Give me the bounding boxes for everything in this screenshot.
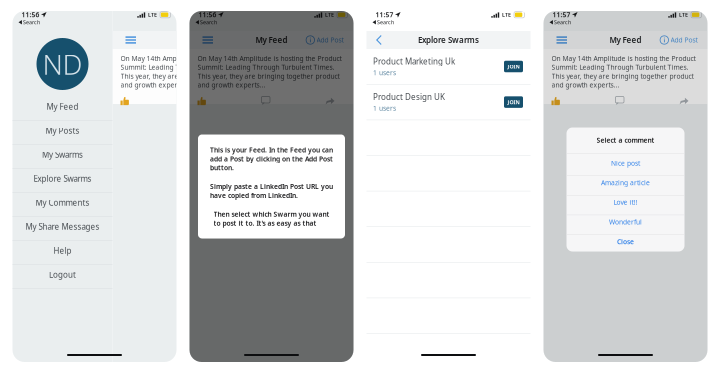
- staticText: LTE: [502, 11, 511, 18]
- staticText: ND: [42, 45, 82, 83]
- staticText: Product Design UK: [373, 92, 445, 102]
- staticText: Nice post: [611, 159, 640, 167]
- button[interactable]: Add Post: [227, 34, 268, 46]
- staticText: Amazing article: [601, 178, 650, 187]
- staticText: 1 users: [373, 68, 396, 77]
- staticText: 11:57: [375, 10, 393, 19]
- staticText: LTE: [325, 11, 334, 18]
- staticText: 11:56: [198, 10, 216, 19]
- staticText: Search: [200, 19, 217, 26]
- button[interactable]: JOIN: [504, 61, 523, 72]
- staticText: Search: [23, 19, 40, 26]
- staticText: My Feed: [255, 35, 287, 45]
- staticText: My Posts: [45, 125, 79, 136]
- button[interactable]: Logout: [12, 263, 112, 287]
- staticText: My Feed: [609, 35, 641, 45]
- button[interactable]: Menu: [123, 34, 138, 46]
- staticText: 11:56: [21, 10, 39, 19]
- button[interactable]: Share: [679, 96, 688, 105]
- button[interactable]: My Comments: [12, 191, 112, 215]
- staticText: My Swarms: [42, 149, 83, 160]
- button[interactable]: My Swarms: [12, 143, 112, 167]
- staticText: On May 14th Amplitude is hosting the Pro…: [551, 54, 695, 89]
- button[interactable]: Love it!!: [566, 193, 684, 212]
- button[interactable]: Like: [120, 96, 129, 105]
- staticText: LTE: [148, 11, 157, 18]
- button[interactable]: My Feed: [12, 95, 112, 119]
- staticText: Love it!!: [613, 198, 637, 207]
- staticText: Add Post: [670, 36, 697, 44]
- staticText: Search: [377, 19, 394, 26]
- button[interactable]: Wonderful: [566, 212, 684, 232]
- staticText: On May 14th Amplitude is hosting the Pro…: [197, 54, 341, 89]
- button[interactable]: Add Post: [304, 34, 345, 46]
- staticText: JOIN: [507, 63, 519, 70]
- staticText: 1 users: [373, 104, 396, 113]
- staticText: JOIN: [507, 99, 519, 106]
- button[interactable]: Like: [551, 96, 560, 105]
- staticText: Then select which Swarm you want to post…: [213, 210, 329, 227]
- staticText: My Share Messages: [25, 221, 99, 232]
- staticText: LTE: [679, 11, 688, 18]
- staticText: Search: [554, 19, 571, 26]
- staticText: Select a comment: [596, 136, 654, 145]
- button[interactable]: Share: [325, 96, 334, 105]
- staticText: This is your Feed. In the Feed you can a…: [210, 145, 333, 172]
- button[interactable]: Close: [566, 232, 684, 251]
- button[interactable]: Nice post: [566, 153, 684, 173]
- button[interactable]: Explore Swarms: [12, 167, 112, 191]
- button[interactable]: Product Design UK: [366, 85, 530, 120]
- button[interactable]: Comment: [184, 96, 193, 105]
- button[interactable]: My Posts: [12, 119, 112, 143]
- button[interactable]: Back: [373, 33, 383, 47]
- staticText: My Feed: [46, 101, 78, 112]
- staticText: Product Marketing Uk: [373, 56, 455, 67]
- staticText: Close: [617, 237, 634, 246]
- button[interactable]: My Share Messages: [12, 215, 112, 239]
- staticText: On May 14th Amplitude is hosting the Pro…: [120, 54, 264, 89]
- button[interactable]: Amazing article: [566, 173, 684, 193]
- button[interactable]: Like: [197, 96, 206, 105]
- button[interactable]: Product Marketing Uk: [366, 49, 530, 85]
- staticText: Add Post: [316, 36, 343, 44]
- button[interactable]: Add Post: [658, 34, 699, 46]
- staticText: Explore Swarms: [418, 35, 479, 45]
- button[interactable]: JOIN: [504, 96, 523, 108]
- staticText: My Feed: [178, 35, 210, 45]
- staticText: Logout: [49, 269, 76, 280]
- staticText: Help: [53, 245, 71, 256]
- staticText: 11:57: [552, 10, 570, 19]
- staticText: Simply paste a LinkedIn Post URL you hav…: [210, 182, 333, 200]
- button[interactable]: Help: [12, 239, 112, 263]
- staticText: Explore Swarms: [33, 173, 91, 184]
- staticText: My Comments: [35, 197, 89, 208]
- staticText: Wonderful: [609, 217, 642, 226]
- staticText: Add Post: [239, 36, 266, 44]
- button[interactable]: Menu: [200, 34, 215, 46]
- button[interactable]: Menu: [554, 34, 569, 46]
- button[interactable]: Comment: [261, 96, 270, 105]
- button[interactable]: Comment: [615, 96, 624, 105]
